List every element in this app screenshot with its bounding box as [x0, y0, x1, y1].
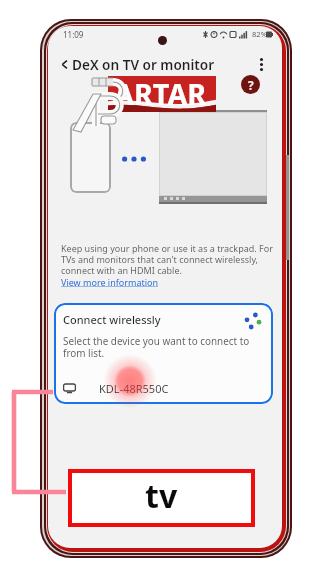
- staticText: DeX on TV or monitor: [72, 55, 215, 74]
- button[interactable]: More options: [249, 52, 273, 76]
- button[interactable]: Help: [241, 75, 260, 94]
- staticText: 11:09: [63, 29, 84, 40]
- staticText: tv: [145, 474, 178, 518]
- staticText: Keep using your phone or use it as a tra…: [61, 242, 273, 254]
- staticText: 82%: [252, 29, 267, 39]
- staticText: KDL-48R550C: [99, 381, 169, 396]
- staticText: ARTAR: [114, 74, 207, 110]
- button[interactable]: View more information: [61, 276, 159, 288]
- staticText: ?: [248, 77, 254, 93]
- staticText: Connect wirelessly: [63, 312, 161, 327]
- button[interactable]: KDL-48R550C: [54, 372, 273, 404]
- staticText: connect with an HDMI cable.: [61, 264, 182, 276]
- staticText: Select the device you want to connect to: [63, 334, 250, 347]
- staticText: TVs and monitors that can't connect wire…: [61, 253, 259, 265]
- button[interactable]: Back: [52, 52, 76, 76]
- staticText: from list.: [63, 346, 105, 359]
